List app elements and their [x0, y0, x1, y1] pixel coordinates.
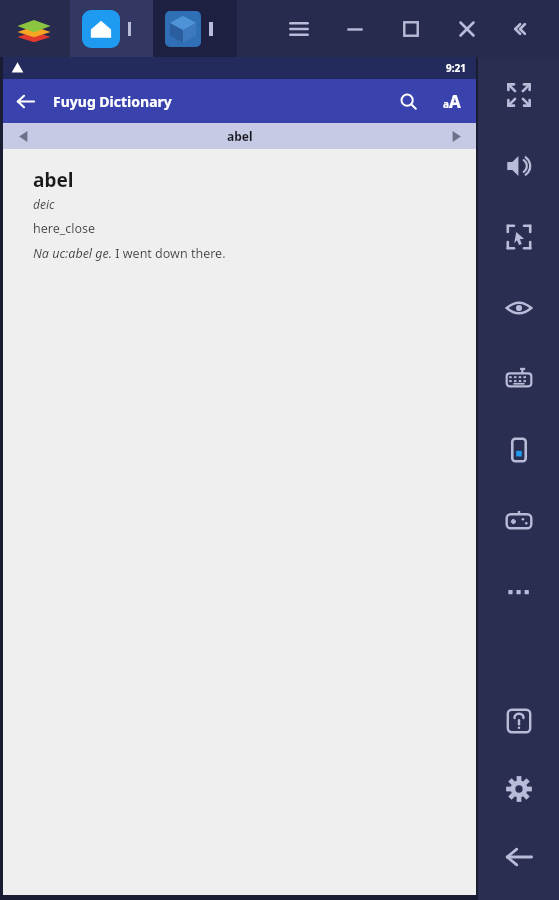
button[interactable]: Keyboard [494, 354, 544, 404]
button[interactable]: Text size [430, 79, 474, 123]
button[interactable]: Eye mode [494, 283, 544, 333]
button[interactable]: Screenshot [494, 212, 544, 262]
button[interactable]: Volume [494, 141, 544, 191]
button[interactable]: Gamepad [494, 496, 544, 546]
staticText: abel [227, 128, 253, 144]
button[interactable]: Back [494, 832, 544, 882]
button[interactable]: Rotate [494, 425, 544, 475]
button[interactable]: Settings [494, 764, 544, 814]
staticText: Na uc:abel ge. I went down there. [33, 245, 226, 262]
button[interactable]: Previous entry [3, 123, 43, 149]
button[interactable]: BlueStacks [12, 7, 56, 51]
button[interactable]: Back [3, 79, 47, 123]
button[interactable]: Help [494, 696, 544, 746]
button[interactable]: More [494, 567, 544, 617]
staticText: abel [33, 167, 74, 193]
button[interactable]: Menu [271, 1, 327, 57]
staticText: deic [33, 196, 55, 212]
button[interactable]: Search [386, 79, 430, 123]
button[interactable]: Collapse [495, 1, 551, 57]
button[interactable]: Minimize [327, 1, 383, 57]
staticText: Fuyug Dictionary [53, 92, 172, 111]
button[interactable]: Maximize [383, 1, 439, 57]
button[interactable] [153, 0, 237, 57]
staticText: aA [443, 90, 461, 113]
button[interactable]: Next entry [436, 123, 476, 149]
button[interactable] [70, 0, 153, 57]
button[interactable]: Fullscreen [494, 70, 544, 120]
button[interactable]: Close [439, 1, 495, 57]
staticText: 9:21 [446, 61, 466, 75]
staticText: here_close [33, 220, 96, 237]
